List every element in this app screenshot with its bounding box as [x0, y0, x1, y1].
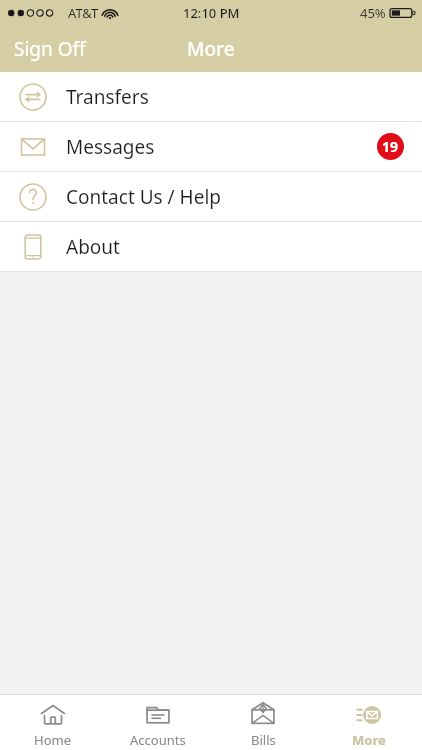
button[interactable]: Bills	[210, 695, 316, 750]
staticText: Home	[34, 731, 71, 749]
staticText: Messages	[66, 134, 155, 160]
button[interactable]: About	[0, 222, 422, 271]
staticText: AT&T	[68, 4, 99, 22]
staticText: Bills	[251, 731, 276, 749]
button[interactable]: Home	[0, 695, 105, 750]
staticText: 12:10 PM	[183, 4, 240, 22]
button[interactable]: Sign Off	[0, 28, 100, 70]
button[interactable]: Contact Us / Help	[0, 172, 422, 221]
staticText: Contact Us / Help	[66, 184, 222, 210]
staticText: More	[187, 36, 235, 62]
staticText: Transfers	[66, 84, 149, 110]
button[interactable]: More	[316, 695, 422, 750]
staticText: More	[352, 731, 386, 749]
staticText: 19	[382, 137, 399, 156]
staticText: Sign Off	[14, 36, 86, 62]
button[interactable]: Accounts	[105, 695, 210, 750]
staticText: About	[66, 234, 120, 260]
button[interactable]: Messages	[0, 122, 422, 171]
staticText: 45%	[360, 4, 386, 22]
staticText: Accounts	[130, 731, 186, 749]
button[interactable]: Transfers	[0, 72, 422, 121]
